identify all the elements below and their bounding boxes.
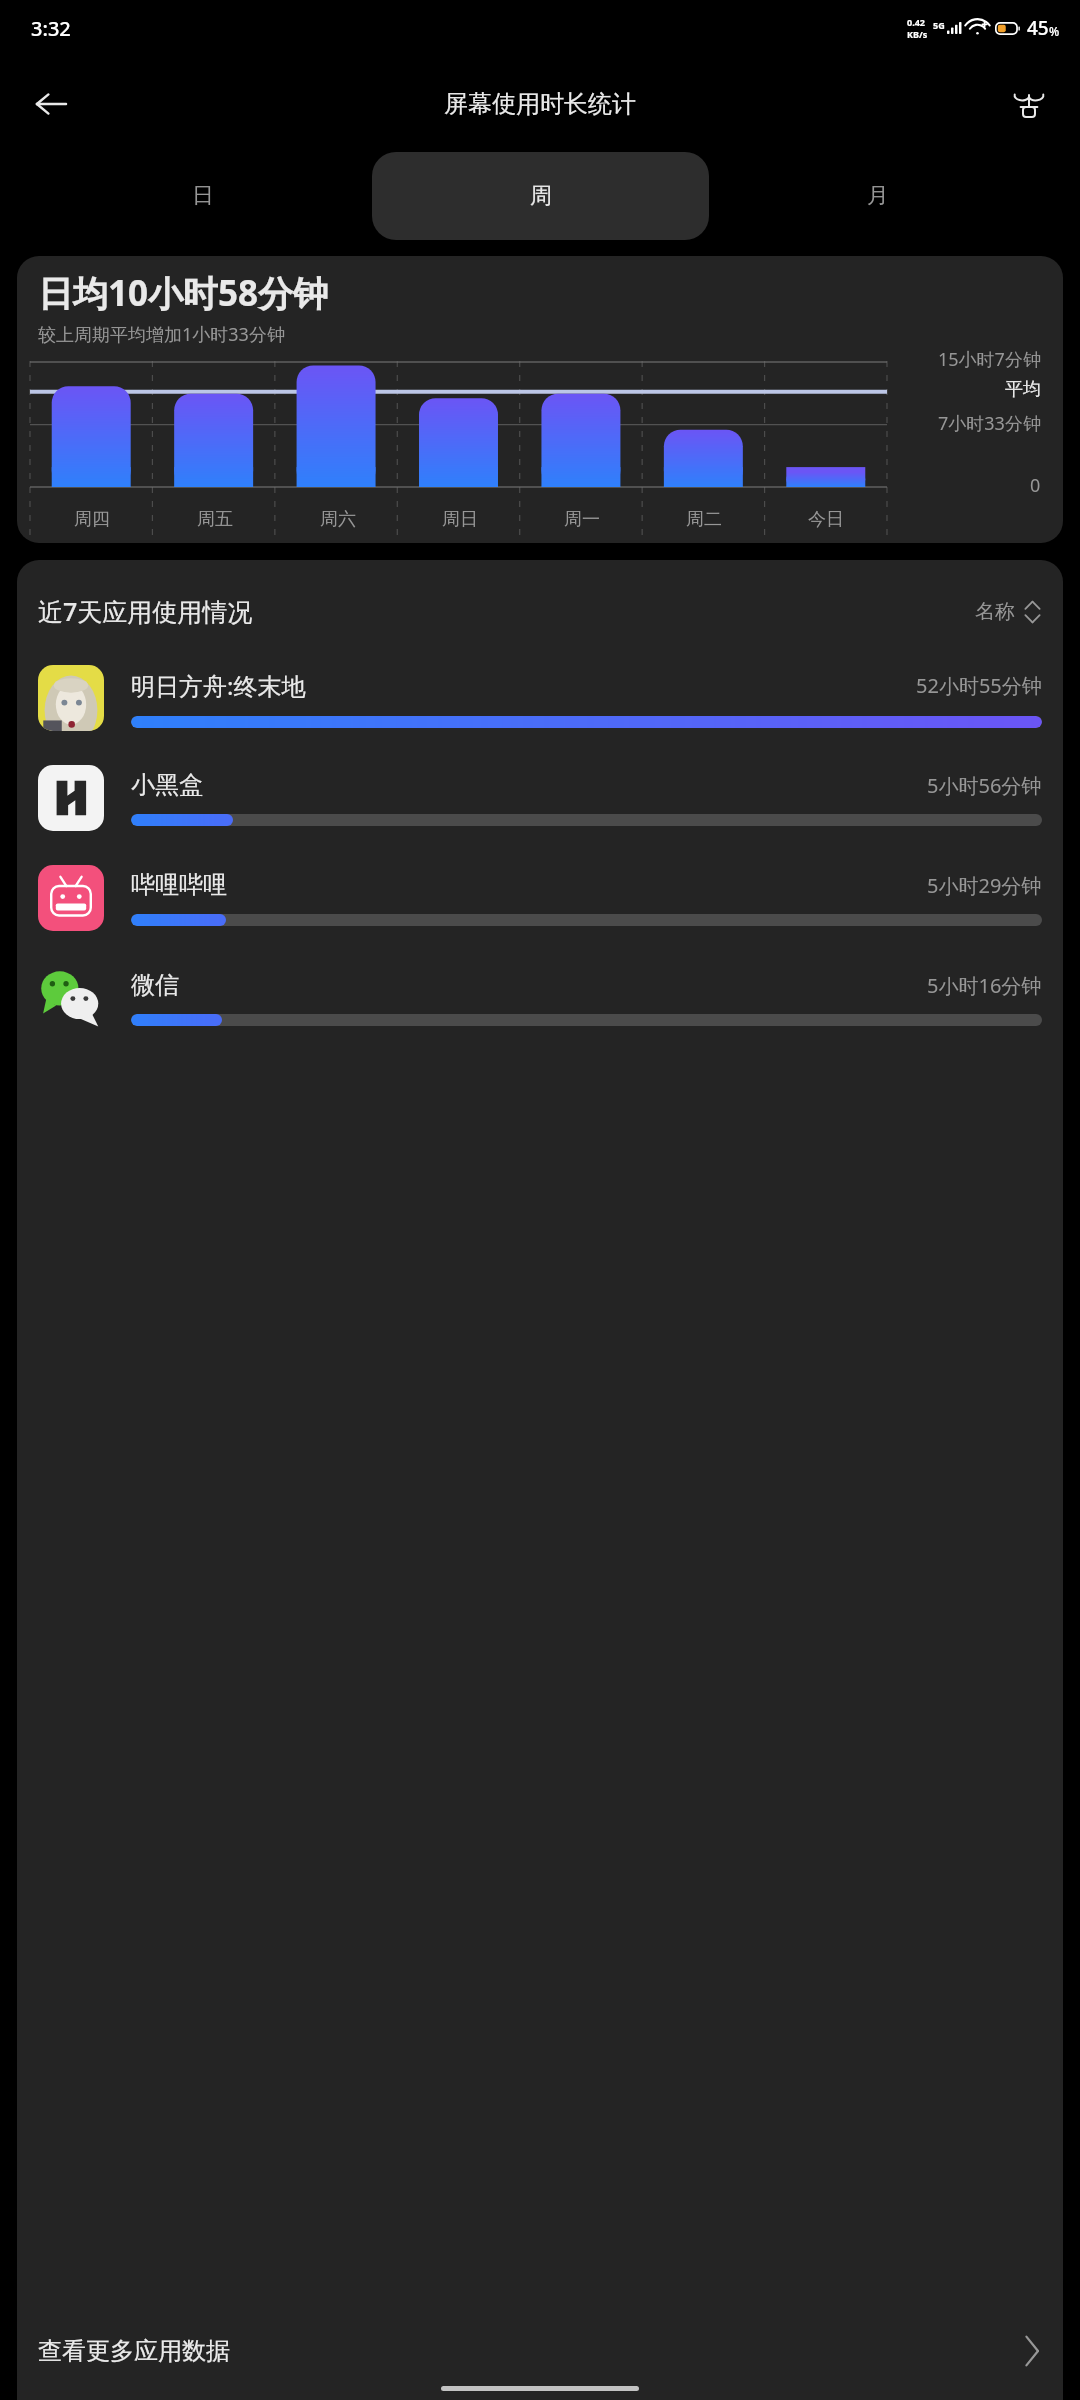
staticText: 周一 xyxy=(564,508,600,531)
staticText: 平均 xyxy=(1005,378,1041,401)
staticText: 周四 xyxy=(74,508,110,531)
staticText: 屏幕使用时长统计 xyxy=(444,89,636,119)
staticText: 较上周期平均增加1小时33分钟 xyxy=(38,322,285,347)
staticText: 0 xyxy=(1030,473,1041,498)
staticText: 5G xyxy=(933,19,945,31)
staticText: 0.42 xyxy=(907,16,925,28)
staticText: 哔哩哔哩 xyxy=(131,870,227,900)
staticText: 月 xyxy=(867,182,889,210)
staticText: 周五 xyxy=(197,508,233,531)
staticText: 5小时56分钟 xyxy=(927,772,1042,799)
staticText: 明日方舟:终末地 xyxy=(131,669,306,702)
staticText: 45 xyxy=(1027,15,1049,41)
staticText: 周 xyxy=(530,182,552,210)
staticText: 15小时7分钟 xyxy=(938,347,1041,372)
staticText: 5小时29分钟 xyxy=(927,872,1042,899)
button[interactable]: 查看更多应用数据 xyxy=(17,2316,1063,2386)
button[interactable]: 日 xyxy=(34,152,372,240)
button[interactable]: Back xyxy=(18,71,84,137)
staticText: 52小时55分钟 xyxy=(916,672,1042,699)
button[interactable]: 微信 xyxy=(17,948,1063,1048)
button[interactable]: 哔哩哔哩 xyxy=(17,848,1063,948)
staticText: 3:32 xyxy=(31,15,71,42)
staticText: 近7天应用使用情况 xyxy=(38,594,253,628)
button[interactable]: 小黑盒 xyxy=(17,748,1063,848)
staticText: 5小时16分钟 xyxy=(927,972,1042,999)
staticText: % xyxy=(1049,23,1060,39)
staticText: 微信 xyxy=(131,970,179,1000)
button[interactable]: 明日方舟:终末地 xyxy=(17,648,1063,748)
button[interactable]: 名称 xyxy=(971,595,1045,628)
staticText: 周六 xyxy=(320,508,356,531)
button[interactable]: 周 xyxy=(372,152,709,240)
staticText: 7小时33分钟 xyxy=(938,411,1041,436)
staticText: 查看更多应用数据 xyxy=(38,2336,230,2366)
staticText: 日均10小时58分钟 xyxy=(38,269,329,317)
button[interactable]: Focus mode xyxy=(998,73,1060,135)
staticText: 日 xyxy=(192,182,214,210)
staticText: 小黑盒 xyxy=(131,770,203,800)
button[interactable]: 月 xyxy=(709,152,1046,240)
staticText: KB/s xyxy=(907,28,928,40)
staticText: 周二 xyxy=(686,508,722,531)
staticText: 今日 xyxy=(808,508,844,531)
staticText: 名称 xyxy=(975,599,1015,624)
staticText: 周日 xyxy=(442,508,478,531)
